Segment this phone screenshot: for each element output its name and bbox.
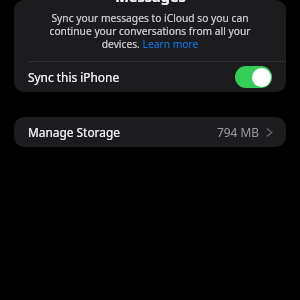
button[interactable]: Manage Storage	[14, 117, 286, 147]
staticText: Manage Storage	[28, 124, 120, 140]
button[interactable]: Sync this iPhone toggle	[235, 66, 272, 88]
button[interactable]: Sync this iPhone	[14, 62, 286, 92]
staticText: Messages	[115, 0, 186, 6]
staticText: 794 MB	[217, 124, 260, 140]
staticText: Sync your messages to iCloud so you can …	[49, 11, 251, 51]
staticText: Sync this iPhone	[28, 69, 120, 85]
